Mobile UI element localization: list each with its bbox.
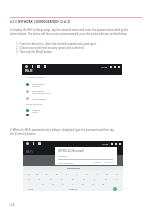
button[interactable]: S xyxy=(34,176,45,181)
button[interactable]: L xyxy=(111,176,122,181)
button[interactable]: K xyxy=(100,176,111,181)
staticText: 1. From the device list, select the desi… xyxy=(16,42,97,46)
button[interactable]: B xyxy=(78,181,88,186)
staticText: Available networks xyxy=(26,76,46,79)
button[interactable]: O xyxy=(102,170,112,176)
button[interactable]: Y xyxy=(72,170,82,176)
button[interactable]: CONNECT xyxy=(104,161,114,164)
button[interactable]: V xyxy=(68,181,78,186)
staticText: K xyxy=(105,177,107,180)
staticText: S xyxy=(39,177,41,180)
staticText: J xyxy=(94,177,95,180)
button[interactable] xyxy=(108,186,122,191)
button[interactable]: C xyxy=(58,181,68,186)
button[interactable]: E xyxy=(42,170,52,176)
staticText: P xyxy=(116,172,118,175)
button[interactable]: LAB-5G xyxy=(26,107,122,114)
staticText: E xyxy=(46,172,48,175)
button[interactable]: T xyxy=(62,170,72,176)
staticText: A xyxy=(28,177,30,180)
button[interactable]: R xyxy=(52,170,62,176)
staticText: 10:48 xyxy=(101,65,108,68)
staticText: N xyxy=(92,182,94,185)
staticText: Password xyxy=(58,155,68,158)
staticText: LAB-5G xyxy=(32,108,41,111)
button[interactable]: CANCEL xyxy=(93,161,101,164)
staticText: administrator. The device will then conn… xyxy=(10,32,142,36)
staticText: I xyxy=(97,172,98,175)
staticText: 4-8 xyxy=(10,203,15,207)
button[interactable]: I xyxy=(92,170,102,176)
staticText: Y xyxy=(76,172,78,175)
staticText: H xyxy=(83,177,85,180)
staticText: 2. Choose your preferred security option… xyxy=(16,46,85,50)
button[interactable]: OFFICE-2G xyxy=(26,88,122,95)
button[interactable]: Back xyxy=(25,65,28,68)
button[interactable]: Back xyxy=(26,142,29,145)
staticText: M xyxy=(102,182,105,185)
staticText: Q xyxy=(28,172,30,175)
button[interactable]: Wi-Fi preferences xyxy=(26,114,122,116)
button[interactable]: Q xyxy=(24,170,33,176)
staticText: 10:48 xyxy=(102,142,109,145)
staticText: Add network xyxy=(32,97,47,100)
staticText: To display the Wi-Fi settings page, tap … xyxy=(10,28,142,32)
staticText: 3. Then tap the [Next] button. xyxy=(16,50,53,54)
staticText: ?123 xyxy=(28,187,34,190)
button[interactable]: English xyxy=(50,186,97,191)
staticText: Saved networks xyxy=(26,103,43,106)
button[interactable]: F xyxy=(56,176,67,181)
staticText: Wi-Fi xyxy=(26,150,33,154)
button[interactable]: J xyxy=(89,176,100,181)
button[interactable]: P xyxy=(112,170,122,176)
button[interactable]: W xyxy=(33,170,42,176)
staticText: English xyxy=(69,187,78,190)
button[interactable]: Add network xyxy=(26,95,122,102)
staticText: . xyxy=(102,187,103,190)
staticText: L xyxy=(116,177,118,180)
staticText: R xyxy=(56,172,58,175)
staticText: GUEST-NET xyxy=(32,82,45,85)
button[interactable]: N xyxy=(88,181,98,186)
staticText: Wi-Fi xyxy=(25,69,33,73)
staticText: OFFICE-2G xyxy=(32,89,44,92)
staticText: G xyxy=(72,177,74,180)
staticText: the [Connect] button. xyxy=(10,132,37,136)
staticText: Z xyxy=(42,182,44,185)
staticText: T xyxy=(66,172,68,175)
button[interactable]: U xyxy=(82,170,92,176)
button[interactable]: Z xyxy=(38,181,48,186)
button[interactable]: G xyxy=(67,176,78,181)
button[interactable]: H xyxy=(78,176,89,181)
staticText: 4.1.3 NETWORK CONFIGURATION (2 of 2) xyxy=(10,20,70,24)
staticText: U xyxy=(86,172,88,175)
button[interactable]: A xyxy=(24,176,34,181)
button[interactable]: GUEST-NET xyxy=(26,81,122,88)
staticText: V xyxy=(72,182,74,185)
button[interactable]: M xyxy=(98,181,108,186)
staticText: F xyxy=(61,177,63,180)
staticText: 4. When the Wi-Fi password entry dialog … xyxy=(10,128,114,132)
button[interactable]: ?123 xyxy=(24,186,38,191)
staticText: Secured xyxy=(32,85,40,88)
staticText: OFFICE-2G (Secured) xyxy=(58,149,84,153)
staticText: Saved xyxy=(32,111,38,114)
button[interactable]: D xyxy=(45,176,56,181)
staticText: O xyxy=(106,172,108,175)
staticText: C xyxy=(62,182,64,185)
staticText: Show password xyxy=(58,162,74,165)
staticText: X xyxy=(52,182,54,185)
staticText: D xyxy=(50,177,52,180)
button[interactable]: X xyxy=(48,181,58,186)
